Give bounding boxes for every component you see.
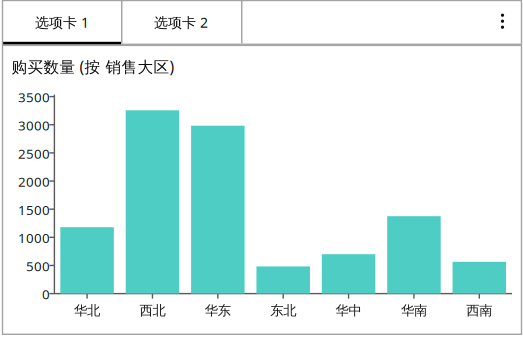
staticText: 选项卡 2 (154, 13, 208, 32)
staticText: 2000 (18, 172, 50, 191)
staticText: 华北 (74, 302, 100, 319)
staticText: 西北 (139, 302, 165, 319)
staticText: 东北 (270, 302, 296, 319)
button[interactable]: 选项卡 2 (121, 1, 241, 43)
button[interactable]: More options (490, 2, 514, 40)
staticText: 2500 (18, 144, 50, 163)
button[interactable]: 选项卡 1 (3, 1, 121, 43)
staticText: 购买数量 (按 销售大区) (11, 56, 174, 77)
staticText: 3000 (18, 116, 50, 134)
staticText: 3500 (18, 88, 50, 106)
staticText: 西南 (466, 302, 492, 319)
staticText: 华中 (336, 302, 362, 319)
staticText: 1500 (18, 201, 50, 219)
staticText: 1000 (18, 229, 50, 247)
staticText: 0 (42, 285, 50, 303)
staticText: 华东 (205, 302, 231, 319)
staticText: 选项卡 1 (35, 13, 89, 32)
staticText: 500 (26, 257, 50, 275)
staticText: 华南 (401, 302, 427, 319)
